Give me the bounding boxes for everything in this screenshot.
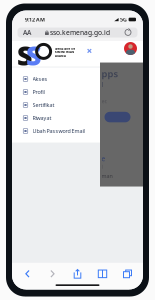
staticText: KEMENTERIAN xyxy=(55,50,74,54)
button[interactable]: Akses xyxy=(12,72,100,85)
button[interactable]: Bookmarks xyxy=(92,268,113,280)
button[interactable]: Sertifikat xyxy=(12,98,100,111)
staticText: Akses xyxy=(32,75,47,83)
staticText: Profil xyxy=(32,88,44,96)
button[interactable]: Share xyxy=(67,268,88,280)
button[interactable]: Forward xyxy=(42,268,63,280)
button[interactable]: Account xyxy=(124,38,137,55)
button[interactable]: Reload xyxy=(120,28,136,37)
button[interactable]: AA xyxy=(19,28,35,37)
button[interactable]: Tabs xyxy=(117,268,138,280)
staticText: AA xyxy=(23,28,31,37)
staticText: AGAMA xyxy=(55,54,66,58)
staticText: 5G xyxy=(120,16,127,23)
staticText: Riwayat xyxy=(32,114,51,122)
staticText: sso.kemenag.go.id xyxy=(50,28,110,37)
staticText: Ubah Password Email xyxy=(32,127,84,135)
staticText: S xyxy=(17,37,32,73)
staticText: man xyxy=(101,172,112,179)
staticText: Sertifikat xyxy=(32,101,54,109)
button[interactable]: Riwayat xyxy=(12,111,100,124)
staticText: er. xyxy=(101,98,106,105)
button[interactable]: Back xyxy=(17,268,38,280)
staticText: e xyxy=(101,154,105,163)
staticText: S xyxy=(26,37,41,73)
staticText: l xyxy=(101,80,103,89)
button[interactable]: Ubah Password Email xyxy=(12,124,100,137)
staticText: pps xyxy=(101,67,118,80)
button[interactable]: Profil xyxy=(12,85,100,98)
staticText: 9:12 AM xyxy=(25,16,45,23)
staticText: SINGLE SIGN ON xyxy=(55,47,75,50)
button[interactable]: Close xyxy=(87,48,92,53)
